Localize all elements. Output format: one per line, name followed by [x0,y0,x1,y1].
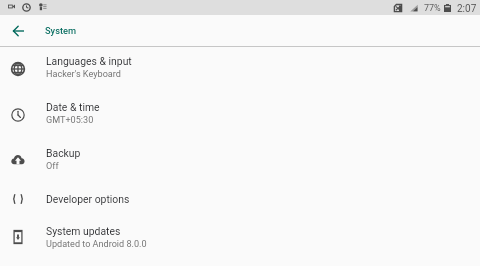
button[interactable]: Date & time [0,93,480,139]
staticText: 2:07 [457,3,477,15]
staticText: System [45,25,77,36]
staticText: Languages & input [46,55,132,67]
staticText: Hacker's Keyboard [46,69,121,80]
staticText: Off [46,161,59,172]
staticText: System updates [46,225,121,237]
staticText: Backup [46,147,81,159]
staticText: GMT+05:30 [46,115,94,126]
staticText: 77% [424,3,441,14]
button[interactable]: Languages & input [0,47,480,93]
staticText: Developer options [46,193,130,205]
button[interactable]: Backup [0,139,480,185]
button[interactable]: System updates [0,217,480,263]
button[interactable]: Back [5,15,32,46]
button[interactable]: Developer options [0,185,480,217]
staticText: Updated to Android 8.0.0 [46,239,147,250]
staticText: Date & time [46,101,100,113]
